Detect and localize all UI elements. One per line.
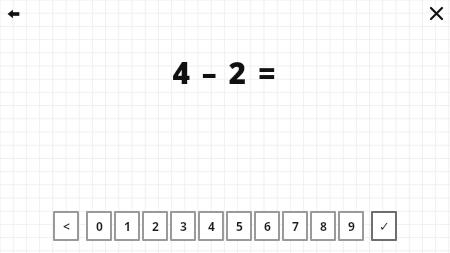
button[interactable]: Confirm — [371, 211, 397, 241]
staticText: 2 — [152, 218, 159, 234]
staticText: 1 — [124, 218, 131, 234]
staticText: 6 — [264, 218, 271, 234]
button[interactable]: 8 — [310, 211, 336, 241]
staticText: 3 — [180, 218, 187, 234]
button[interactable]: Close — [424, 1, 448, 25]
staticText: 5 — [236, 218, 243, 234]
button[interactable]: 3 — [170, 211, 196, 241]
button[interactable]: 1 — [114, 211, 140, 241]
staticText: < — [63, 218, 70, 234]
staticText: 4 — [208, 218, 215, 234]
staticText: 7 — [292, 218, 299, 234]
staticText: ✓ — [379, 219, 390, 234]
staticText: 4 – 2 = — [172, 52, 278, 93]
button[interactable]: Back — [2, 2, 26, 26]
button[interactable]: 5 — [226, 211, 252, 241]
button[interactable]: Backspace — [53, 211, 79, 241]
button[interactable]: 6 — [254, 211, 280, 241]
staticText: 0 — [96, 218, 103, 234]
button[interactable]: 7 — [282, 211, 308, 241]
button[interactable]: 0 — [86, 211, 112, 241]
button[interactable]: 9 — [338, 211, 364, 241]
button[interactable]: 2 — [142, 211, 168, 241]
button[interactable]: 4 — [198, 211, 224, 241]
staticText: 8 — [320, 218, 327, 234]
staticText: 9 — [348, 218, 355, 234]
